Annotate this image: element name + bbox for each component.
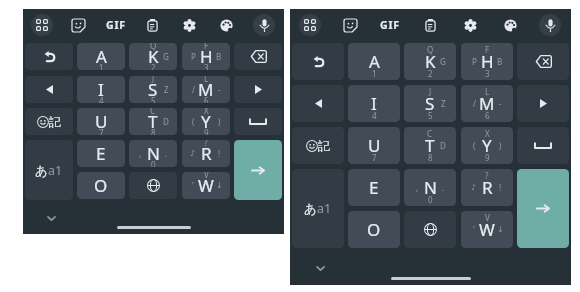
button[interactable]: Switch language <box>404 211 456 248</box>
other: Undo <box>43 50 56 63</box>
staticText: U <box>368 134 381 157</box>
button[interactable]: N <box>404 169 456 206</box>
button[interactable]: Hide keyboard <box>306 251 334 285</box>
button[interactable]: Space <box>234 108 282 135</box>
button[interactable]: A <box>348 43 400 80</box>
button[interactable]: W <box>182 172 230 199</box>
staticText: ) <box>218 116 221 127</box>
button[interactable]: T <box>404 127 456 164</box>
staticText: あ <box>304 201 317 217</box>
button[interactable]: M <box>461 85 513 122</box>
button[interactable]: Settings <box>450 9 490 41</box>
staticText: ' <box>473 224 475 235</box>
button[interactable]: Clipboard <box>410 9 450 41</box>
button[interactable]: O <box>77 172 125 199</box>
button[interactable]: Y <box>461 127 513 164</box>
button[interactable]: H <box>461 43 513 80</box>
button[interactable]: S <box>129 76 177 103</box>
staticText: ↓ <box>497 225 504 234</box>
staticText: 5 <box>428 110 433 121</box>
button[interactable]: Undo <box>25 43 73 70</box>
staticText: O <box>94 174 108 197</box>
button[interactable]: Undo <box>292 43 344 80</box>
button[interactable]: 記 <box>25 108 73 135</box>
staticText: E <box>96 142 106 165</box>
staticText: W <box>479 218 495 241</box>
staticText: T <box>148 110 158 133</box>
button[interactable]: Switch language <box>129 172 177 199</box>
staticText: M <box>479 92 495 115</box>
staticText: H <box>200 45 213 68</box>
button[interactable]: Settings <box>171 9 208 41</box>
button[interactable]: Keyboard apps <box>290 9 330 41</box>
button[interactable]: Voice input <box>530 9 570 41</box>
button[interactable]: Stickers <box>330 9 370 41</box>
button[interactable]: あ <box>25 140 73 200</box>
button[interactable]: R <box>461 169 513 206</box>
button[interactable]: あ <box>292 169 344 248</box>
button[interactable]: O <box>348 211 400 248</box>
button[interactable]: Cursor left <box>25 76 73 103</box>
staticText: V <box>204 172 209 180</box>
button[interactable]: K <box>129 43 177 70</box>
button[interactable]: Enter <box>517 169 569 248</box>
button[interactable]: E <box>77 140 125 167</box>
button[interactable]: Clipboard <box>134 9 171 41</box>
button[interactable]: Backspace <box>234 43 282 70</box>
button[interactable]: Themes <box>208 9 245 41</box>
other: Cursor left <box>46 85 53 94</box>
button[interactable]: E <box>348 169 400 206</box>
button[interactable]: M <box>182 76 230 103</box>
staticText: F <box>204 43 209 51</box>
button[interactable]: T <box>129 108 177 135</box>
button[interactable]: Cursor right <box>517 85 569 122</box>
button[interactable]: GIF <box>370 9 410 41</box>
staticText: 2 <box>428 68 433 79</box>
button[interactable]: Y <box>182 108 230 135</box>
button[interactable]: Cursor right <box>234 76 282 103</box>
staticText: ♪ <box>471 183 477 192</box>
button[interactable]: U <box>77 108 125 135</box>
button[interactable]: U <box>348 127 400 164</box>
staticText: E <box>369 176 379 199</box>
button[interactable]: 記 <box>292 127 344 164</box>
button[interactable]: I <box>77 76 125 103</box>
button[interactable]: Enter <box>234 140 282 200</box>
other: Space <box>249 118 267 125</box>
button[interactable]: Stickers <box>60 9 97 41</box>
button[interactable]: Voice input <box>245 9 282 41</box>
button[interactable]: K <box>404 43 456 80</box>
staticText: a1 <box>48 162 63 179</box>
other: Keyboard apps <box>299 14 321 36</box>
button[interactable]: W <box>461 211 513 248</box>
button[interactable]: N <box>129 140 177 167</box>
button[interactable]: H <box>182 43 230 70</box>
button[interactable]: R <box>182 140 230 167</box>
other: Cursor right <box>255 85 262 94</box>
staticText: S <box>148 78 158 101</box>
button[interactable]: Themes <box>490 9 530 41</box>
button[interactable]: Cursor left <box>292 85 344 122</box>
staticText: ( <box>473 140 476 151</box>
staticText: A <box>369 50 380 73</box>
other: Clipboard <box>146 19 159 32</box>
other: Undo <box>312 55 325 68</box>
staticText: - <box>218 84 221 95</box>
other: Voice input <box>253 14 275 36</box>
staticText: ) <box>499 140 502 151</box>
staticText: 4 <box>99 95 104 103</box>
staticText: N <box>147 142 160 165</box>
button[interactable]: Hide keyboard <box>37 202 65 234</box>
staticText: U <box>95 110 108 133</box>
button[interactable]: Keyboard apps <box>23 9 60 41</box>
button[interactable]: S <box>404 85 456 122</box>
button[interactable]: Backspace <box>517 43 569 80</box>
button[interactable]: Space <box>517 127 569 164</box>
button[interactable]: I <box>348 85 400 122</box>
staticText: 記 <box>318 138 330 153</box>
staticText: T <box>425 134 435 157</box>
button[interactable]: A <box>77 43 125 70</box>
staticText: 7 <box>372 152 377 163</box>
button[interactable]: GIF <box>97 9 134 41</box>
staticText: X <box>485 128 490 139</box>
